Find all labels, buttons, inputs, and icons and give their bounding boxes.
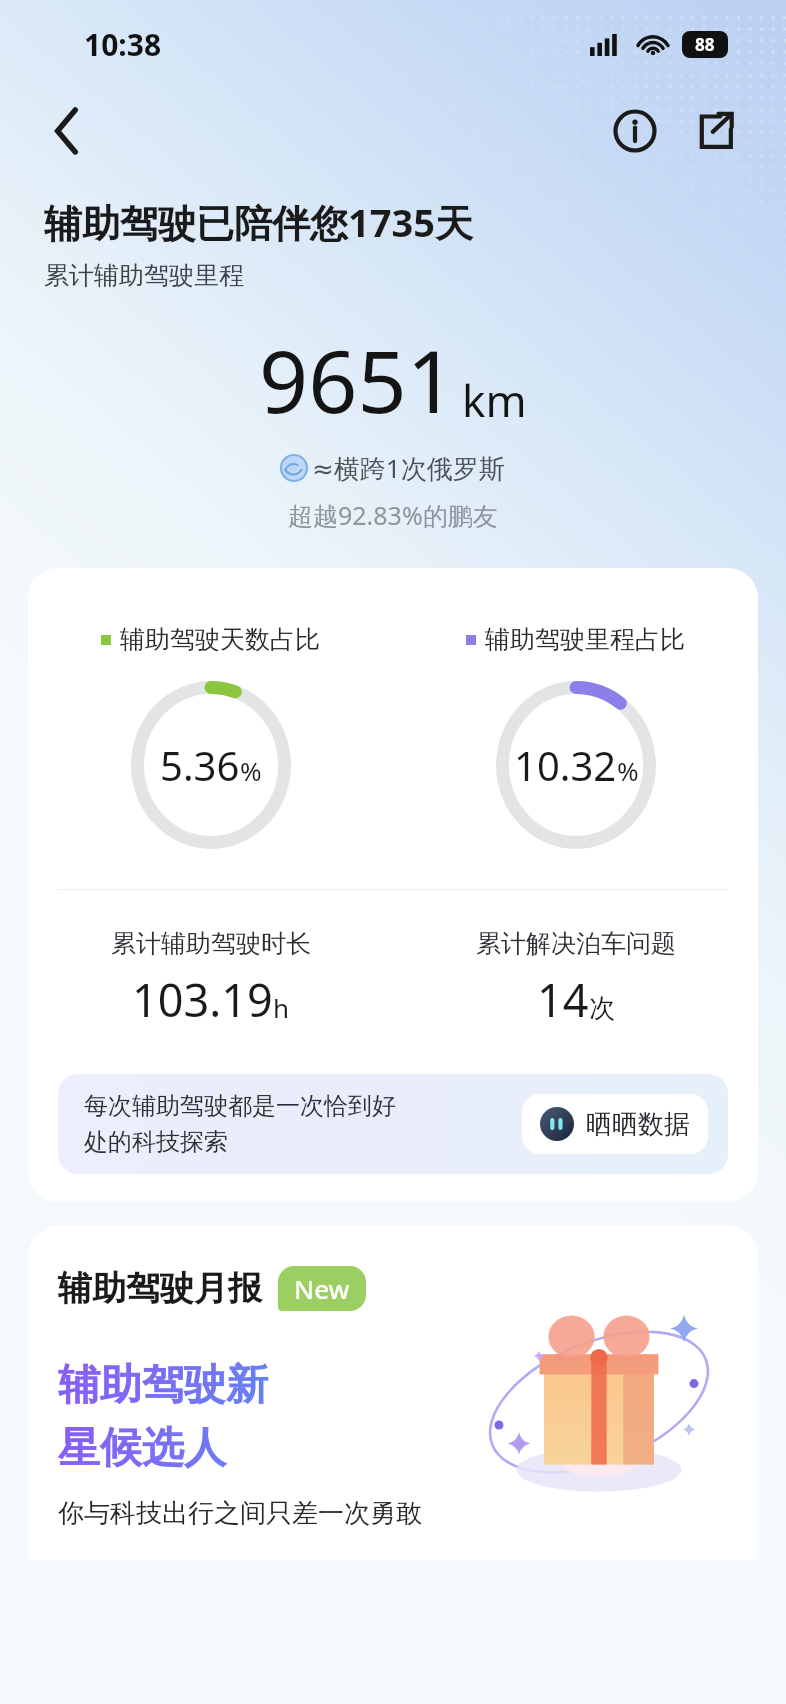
staticText: 9651 bbox=[259, 321, 456, 438]
staticText: h bbox=[273, 990, 290, 1025]
button[interactable]: 晒晒数据 bbox=[522, 1094, 708, 1154]
staticText: 晒晒数据 bbox=[586, 1108, 690, 1141]
staticText: 10.32 bbox=[514, 738, 617, 792]
staticText: 辅助驾驶天数占比 bbox=[120, 624, 320, 655]
button[interactable]: Back bbox=[40, 103, 96, 159]
staticText: 10:38 bbox=[84, 24, 162, 65]
staticText: 辅助驾驶月报 bbox=[58, 1267, 262, 1310]
staticText: 5.36 bbox=[160, 738, 240, 792]
staticText: 累计辅助驾驶时长 bbox=[111, 928, 311, 959]
button[interactable]: Share bbox=[686, 102, 744, 160]
staticText: 次 bbox=[589, 992, 615, 1025]
staticText: 超越92.83%的鹏友 bbox=[288, 498, 498, 532]
staticText: 14 bbox=[537, 969, 589, 1030]
staticText: New bbox=[294, 1271, 350, 1306]
staticText: % bbox=[617, 753, 639, 788]
staticText: 累计辅助驾驶里程 bbox=[44, 260, 244, 291]
staticText: ≈横跨1次俄罗斯 bbox=[312, 450, 505, 486]
button[interactable]: Info bbox=[606, 102, 664, 160]
staticText: 你与科技出行之间只差一次勇敢 bbox=[58, 1497, 422, 1530]
staticText: 星候选人 bbox=[58, 1422, 226, 1475]
staticText: 103.19 bbox=[132, 969, 273, 1030]
staticText: 累计解决泊车问题 bbox=[476, 928, 676, 959]
staticText: % bbox=[240, 753, 262, 788]
staticText: 辅助驾驶新 bbox=[58, 1359, 268, 1412]
staticText: 88 bbox=[695, 33, 715, 56]
staticText: km bbox=[462, 370, 527, 430]
staticText: 辅助驾驶里程占比 bbox=[485, 624, 685, 655]
staticText: 每次辅助驾驶都是一次恰到好 处的科技探索 bbox=[84, 1091, 396, 1157]
staticText: 辅助驾驶已陪伴您1735天 bbox=[44, 196, 473, 248]
